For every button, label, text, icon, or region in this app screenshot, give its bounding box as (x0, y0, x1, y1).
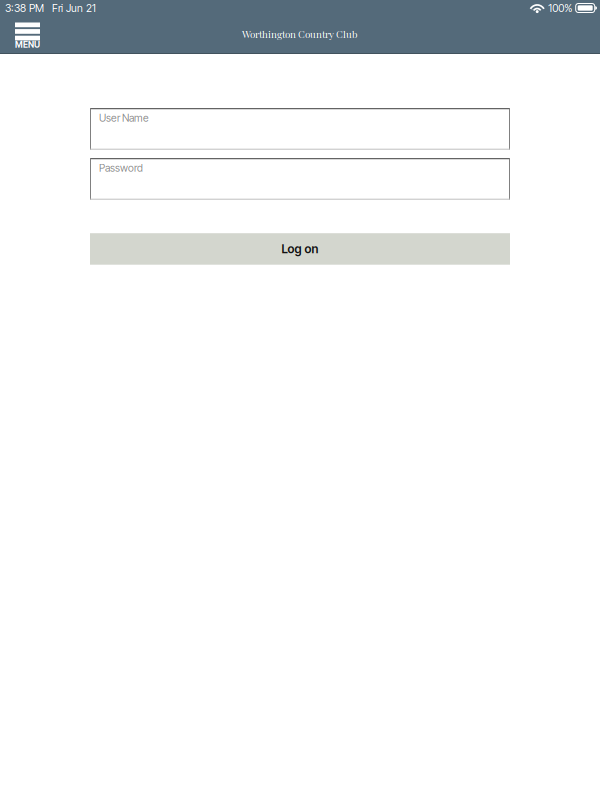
staticText: User Name (99, 112, 149, 124)
button[interactable]: Password (90, 158, 510, 200)
button[interactable]: User Name (90, 108, 510, 150)
button[interactable]: Menu (15, 22, 40, 47)
staticText: Worthington Country Club (242, 27, 358, 41)
staticText: MENU (15, 39, 40, 50)
staticText: Log on (281, 242, 318, 256)
staticText: Password (99, 162, 143, 174)
staticText: 3:38 PM (5, 1, 44, 14)
button[interactable]: Log on (90, 233, 510, 265)
staticText: Fri Jun 21 (52, 1, 96, 14)
staticText: 100% (548, 1, 572, 14)
